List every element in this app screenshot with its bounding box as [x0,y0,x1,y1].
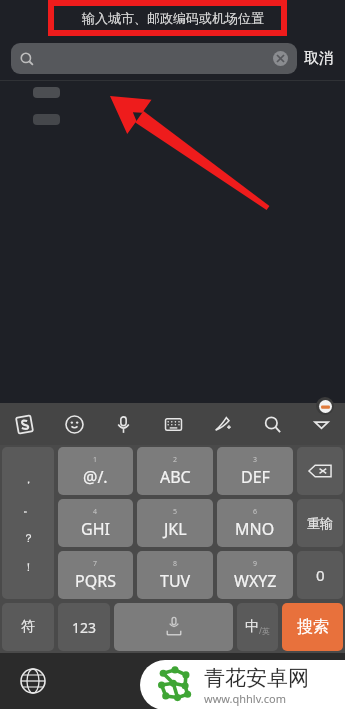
staticText: WXYZ [234,570,277,592]
staticText: 中 [245,618,259,636]
staticText: JKL [164,518,187,540]
button[interactable]: 中 [237,603,278,651]
staticText: 1 [93,455,98,465]
button[interactable]: Emoji [58,408,90,440]
button[interactable]: Search [256,408,288,440]
staticText: 123 [72,618,97,637]
button[interactable]: 搜索 [282,603,343,651]
button[interactable]: 5 [137,499,213,547]
staticText: 符 [21,618,35,636]
button[interactable]: Clear [273,51,288,66]
button[interactable]: 取消 [304,49,334,68]
staticText: 2 [173,455,178,465]
button[interactable]: Space [114,603,233,651]
staticText: 0 [316,565,325,585]
button[interactable]: Handwriting [206,408,238,440]
button[interactable]: 6 [217,499,293,547]
button[interactable]: Voice input [107,408,139,440]
button[interactable]: Clear [11,43,297,74]
staticText: 取消 [304,49,334,68]
staticText: /英 [259,625,270,636]
staticText: 。 [23,501,34,515]
button[interactable]: 9 [217,551,293,599]
staticText: 7 [93,559,98,569]
staticText: TUV [160,570,191,592]
button[interactable]: Account [316,397,334,415]
staticText: ！ [23,560,34,574]
staticText: 青花安卓网 [204,665,309,691]
button[interactable]: 8 [137,551,213,599]
button[interactable]: 2 [137,447,213,495]
staticText: 搜索 [297,617,329,637]
staticText: ABC [160,466,191,488]
staticText: ， [23,472,34,486]
button[interactable]: Delete [297,447,343,495]
staticText: 3 [253,455,258,465]
button[interactable]: 123 [58,603,110,651]
staticText: PQRS [75,570,116,592]
staticText: 重输 [307,515,333,531]
button[interactable]: Sogou input [8,408,40,440]
button[interactable]: 0 [297,551,343,599]
button[interactable]: 4 [58,499,133,547]
button[interactable]: 符 [2,603,54,651]
button[interactable]: 1 [58,447,133,495]
staticText: www.qhhlv.com [204,691,286,706]
button[interactable]: 3 [217,447,293,495]
staticText: 4 [93,507,98,517]
button[interactable]: 7 [58,551,133,599]
staticText: DEF [241,466,270,488]
staticText: 8 [173,559,178,569]
button[interactable]: Switch language [20,668,46,694]
staticText: ？ [23,531,34,545]
staticText: 5 [173,507,178,517]
staticText: 9 [253,559,258,569]
button[interactable]: 重输 [297,499,343,547]
staticText: 输入城市、邮政编码或机场位置 [82,10,264,26]
staticText: GHI [81,518,110,540]
staticText: 6 [253,507,258,517]
button[interactable]: ， [2,447,54,599]
button[interactable]: Keyboard layout [157,408,189,440]
button[interactable]: Hide keyboard [305,408,337,440]
staticText: MNO [235,518,275,540]
staticText: @/. [83,466,108,488]
